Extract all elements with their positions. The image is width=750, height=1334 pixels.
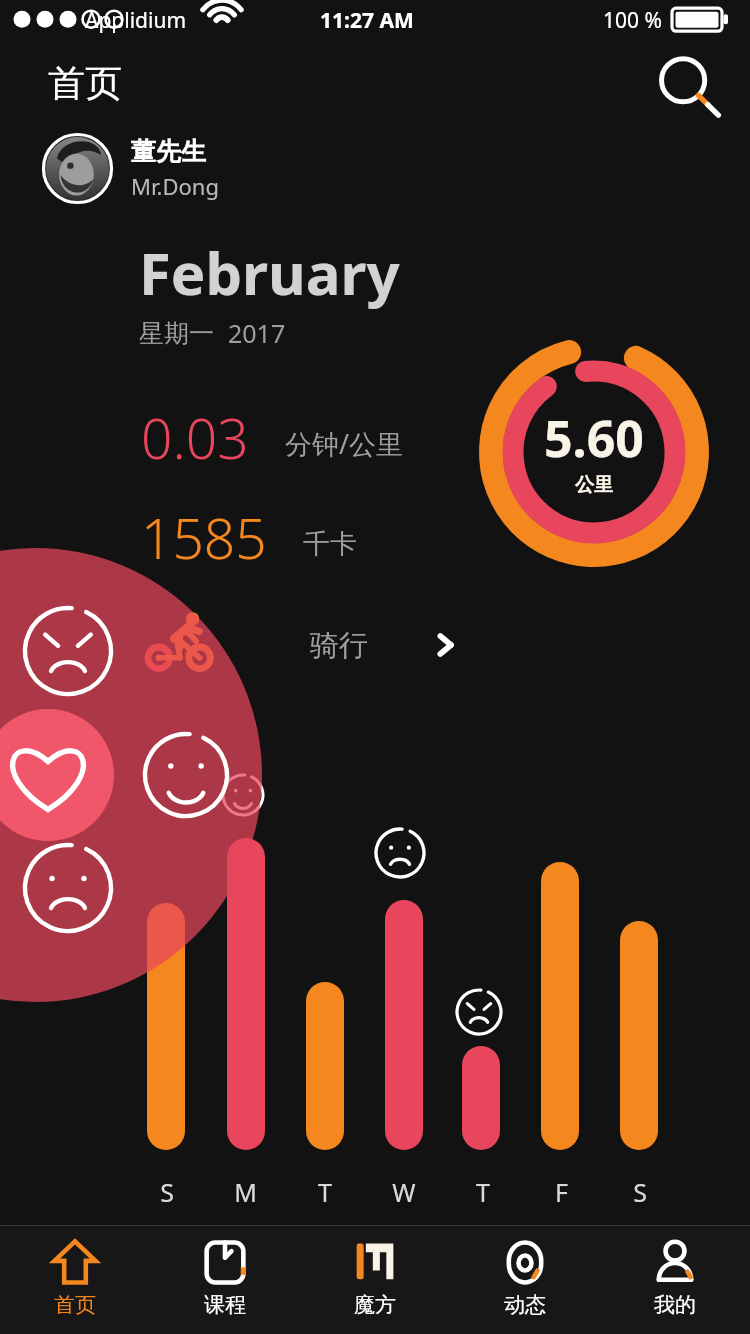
button[interactable]: 课程: [150, 1226, 300, 1318]
staticText: 0.03: [141, 400, 249, 475]
staticText: T: [318, 1175, 332, 1209]
staticText: 动态: [504, 1292, 546, 1318]
staticText: 公里: [575, 473, 613, 497]
staticText: M: [234, 1175, 257, 1209]
staticText: 星期一: [139, 318, 214, 349]
staticText: 1585: [141, 500, 267, 575]
staticText: 首页: [54, 1292, 96, 1318]
staticText: 5.60: [544, 404, 644, 472]
staticText: 董先生: [131, 136, 206, 167]
button[interactable]: 魔方: [300, 1226, 450, 1318]
staticText: Applidium: [85, 6, 187, 35]
staticText: 2017: [228, 316, 286, 350]
button[interactable]: 首页: [0, 1226, 150, 1318]
button[interactable]: Search: [650, 50, 722, 122]
staticText: 11:27 AM: [320, 6, 414, 35]
staticText: 我的: [654, 1292, 696, 1318]
staticText: 课程: [204, 1292, 246, 1318]
staticText: February: [139, 233, 400, 312]
staticText: F: [555, 1175, 568, 1209]
button[interactable]: Distance 5.60 kilometres: [478, 336, 710, 568]
staticText: S: [160, 1175, 174, 1209]
staticText: Mr.Dong: [131, 171, 219, 201]
staticText: T: [476, 1175, 490, 1209]
staticText: 100 %: [603, 6, 662, 35]
staticText: 首页: [48, 60, 122, 107]
staticText: 骑行: [310, 627, 368, 664]
staticText: S: [633, 1175, 647, 1209]
button[interactable]: 动态: [450, 1226, 600, 1318]
staticText: 魔方: [354, 1292, 396, 1318]
button[interactable]: 我的: [600, 1226, 750, 1318]
staticText: W: [392, 1175, 416, 1209]
staticText: 分钟/公里: [285, 425, 404, 462]
button[interactable]: 董先生: [42, 133, 219, 204]
button[interactable]: 骑行: [140, 600, 490, 690]
staticText: 千卡: [303, 527, 357, 561]
